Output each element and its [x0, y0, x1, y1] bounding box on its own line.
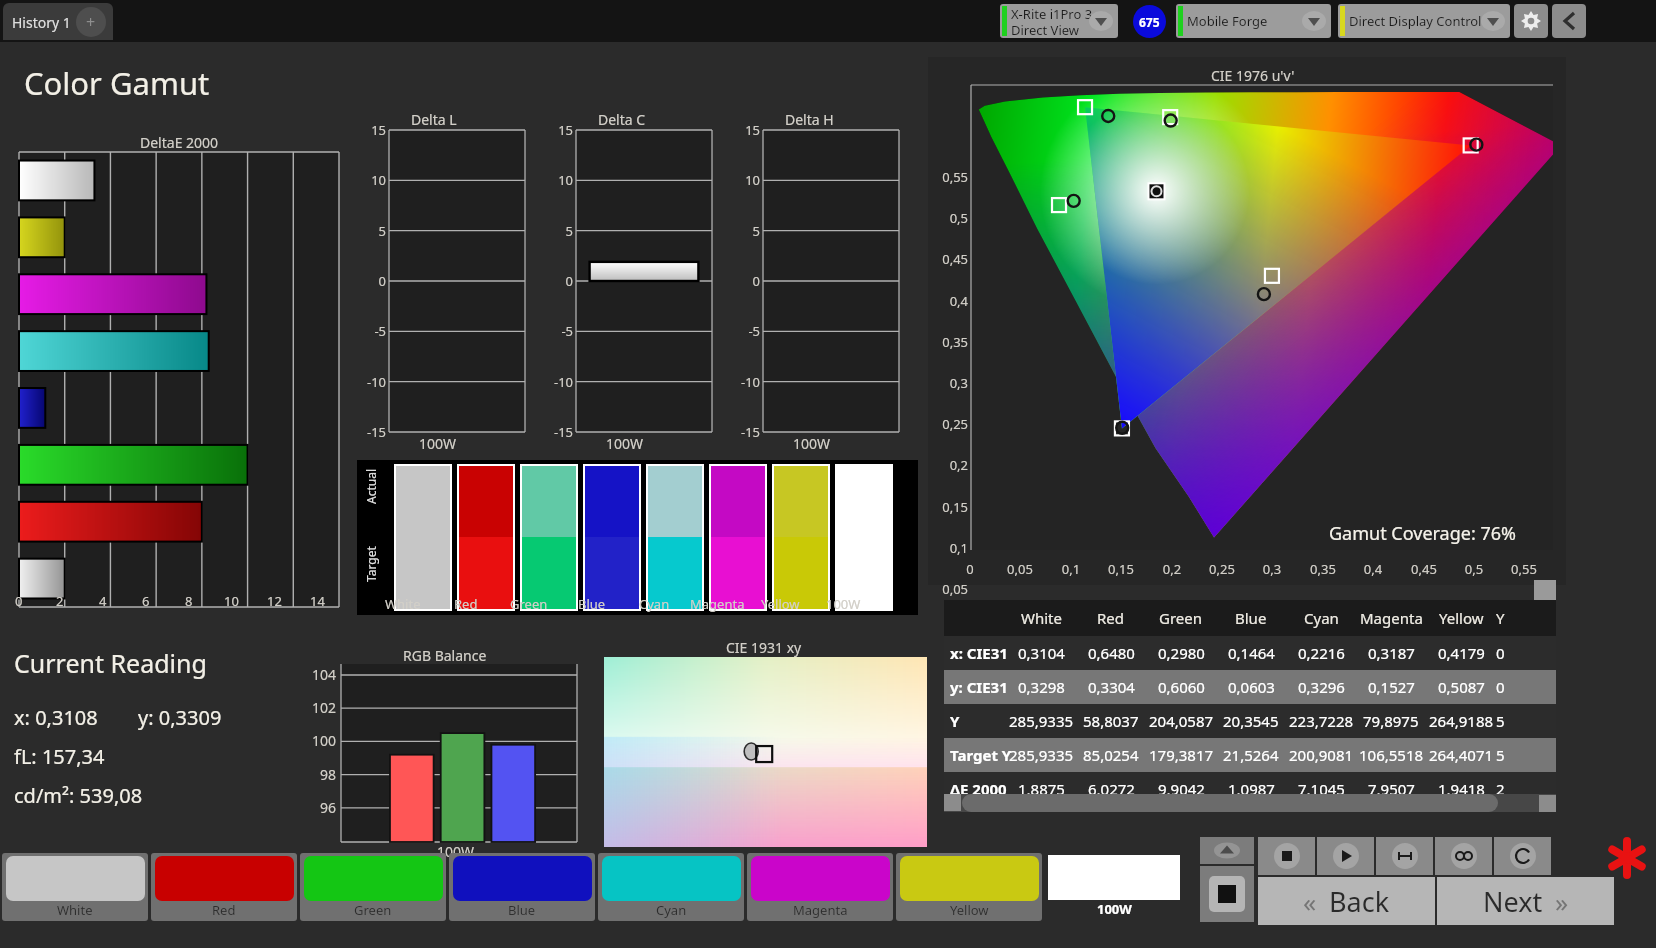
staticText: 98: [306, 765, 336, 784]
button[interactable]: New history: [76, 7, 106, 37]
button[interactable]: Favorite: [1604, 835, 1650, 881]
staticText: 20,3545: [1223, 711, 1279, 731]
staticText: 223,7228: [1289, 711, 1354, 731]
staticText: Red: [1097, 608, 1125, 628]
button[interactable]: [774, 466, 828, 609]
staticText: x: 0,3108: [14, 704, 98, 731]
button[interactable]: [522, 466, 576, 609]
button[interactable]: Stop measurement: [1200, 866, 1254, 922]
staticText: y: CIE31: [950, 677, 1008, 697]
staticText: 6,0272: [1088, 779, 1135, 799]
staticText: -5: [357, 322, 386, 340]
staticText: fL: 157,34: [14, 743, 105, 770]
button[interactable]: Previous page: [1552, 4, 1586, 38]
staticText: Color Gamut: [24, 62, 210, 104]
button[interactable]: Mobile Forge: [1176, 4, 1331, 38]
staticText: 0,5: [932, 209, 968, 227]
staticText: White: [57, 901, 93, 919]
button[interactable]: [648, 466, 702, 609]
button[interactable]: Red: [151, 853, 297, 921]
button[interactable]: x: CIE31: [944, 636, 1556, 670]
staticText: History 1: [12, 13, 71, 32]
button[interactable]: «: [1258, 877, 1435, 925]
button[interactable]: Collapse panel: [1200, 837, 1254, 864]
staticText: 10: [224, 592, 239, 610]
button[interactable]: Target Y: [944, 738, 1556, 772]
staticText: 204,0587: [1149, 711, 1214, 731]
button[interactable]: 100W: [1045, 853, 1183, 921]
button[interactable]: Play: [1317, 837, 1374, 875]
button[interactable]: X-Rite i1Pro 3: [1000, 4, 1118, 38]
staticText: Direct Display Control: [1349, 12, 1482, 30]
button[interactable]: Green: [300, 853, 446, 921]
staticText: X-Rite i1Pro 3: [1011, 5, 1093, 23]
staticText: Actual: [363, 468, 379, 504]
staticText: 264,4071: [1429, 745, 1494, 765]
staticText: 0,25: [1204, 560, 1240, 578]
button[interactable]: [837, 466, 891, 609]
button[interactable]: [585, 466, 639, 609]
staticText: 0,4179: [1438, 643, 1485, 663]
staticText: 0,1527: [1368, 677, 1415, 697]
staticText: 0,3298: [1018, 677, 1065, 697]
staticText: Green: [1159, 608, 1203, 628]
staticText: 0: [357, 272, 386, 290]
staticText: ΔE 2000: [950, 779, 1007, 799]
staticText: Y: [950, 711, 960, 731]
staticText: 0,2: [932, 456, 968, 474]
button[interactable]: [604, 657, 927, 847]
staticText: 0,1: [1053, 560, 1089, 578]
staticText: Blue: [578, 595, 606, 613]
staticText: 0,3: [1254, 560, 1290, 578]
staticText: 100W: [437, 842, 475, 861]
staticText: Target Y: [950, 745, 1012, 765]
staticText: 0,05: [1002, 560, 1038, 578]
button[interactable]: Y: [944, 704, 1556, 738]
staticText: 100W: [419, 434, 457, 453]
staticText: 5: [1496, 745, 1505, 765]
staticText: 0,35: [932, 333, 968, 351]
button[interactable]: White: [2, 853, 148, 921]
button[interactable]: Yellow: [896, 853, 1042, 921]
staticText: 0: [731, 272, 760, 290]
staticText: cd/m²: 539,08: [14, 782, 143, 809]
button[interactable]: ΔE 2000: [944, 772, 1556, 806]
staticText: -10: [544, 373, 573, 391]
staticText: 100W: [1097, 900, 1132, 918]
button[interactable]: Settings: [1514, 4, 1548, 38]
staticText: 5: [1496, 711, 1505, 731]
button[interactable]: [459, 466, 513, 609]
staticText: 0,6060: [1158, 677, 1205, 697]
button[interactable]: Magenta: [747, 853, 893, 921]
staticText: x: CIE31: [950, 643, 1008, 663]
staticText: 0,3304: [1088, 677, 1135, 697]
staticText: 12: [267, 592, 282, 610]
button[interactable]: Stop: [1258, 837, 1315, 875]
staticText: Gamut Coverage: 76%: [1329, 521, 1516, 546]
button[interactable]: 675: [1133, 5, 1166, 38]
staticText: -10: [731, 373, 760, 391]
staticText: 15: [357, 121, 386, 139]
button[interactable]: Cyan: [598, 853, 744, 921]
staticText: «: [1303, 884, 1317, 919]
button[interactable]: Continuous: [1435, 837, 1492, 875]
button[interactable]: [962, 794, 1498, 812]
staticText: -15: [544, 423, 573, 441]
button[interactable]: Direct Display Control: [1338, 4, 1510, 38]
button[interactable]: History 1: [3, 3, 113, 40]
button[interactable]: y: CIE31: [944, 670, 1556, 704]
button[interactable]: Range: [1376, 837, 1433, 875]
staticText: 0,15: [1103, 560, 1139, 578]
staticText: Next: [1483, 883, 1543, 920]
button[interactable]: [711, 466, 765, 609]
button[interactable]: Refresh: [1494, 837, 1551, 875]
staticText: 6: [142, 592, 150, 610]
staticText: 9,9042: [1158, 779, 1205, 799]
button[interactable]: Blue: [449, 853, 595, 921]
staticText: Cyan: [1304, 608, 1339, 628]
button[interactable]: Next: [1437, 877, 1614, 925]
